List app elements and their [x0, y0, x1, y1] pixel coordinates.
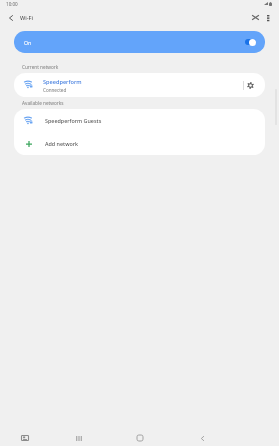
- button[interactable]: Back: [192, 428, 212, 446]
- staticText: On: [24, 39, 32, 46]
- staticText: 10:00: [6, 1, 18, 7]
- staticText: Add network: [45, 140, 79, 147]
- staticText: Wi-Fi: [20, 14, 34, 22]
- button[interactable]: Network settings: [242, 73, 258, 97]
- staticText: Connected: [43, 87, 67, 93]
- button[interactable]: Back: [3, 10, 18, 25]
- staticText: Available networks: [22, 100, 64, 106]
- button[interactable]: On: [14, 31, 265, 53]
- staticText: Speedperform Guests: [45, 117, 102, 124]
- staticText: Current network: [22, 64, 59, 70]
- button[interactable]: Speedperform: [14, 73, 243, 97]
- button[interactable]: Screenshot: [15, 428, 35, 446]
- button[interactable]: Speedperform Guests: [14, 109, 265, 132]
- button[interactable]: Recent apps: [69, 428, 89, 446]
- button[interactable]: More options: [261, 10, 276, 25]
- staticText: Speedperform: [43, 78, 82, 86]
- button[interactable]: Add network: [14, 132, 265, 155]
- button[interactable]: Disconnect: [248, 10, 263, 25]
- button[interactable]: Home: [130, 428, 150, 446]
